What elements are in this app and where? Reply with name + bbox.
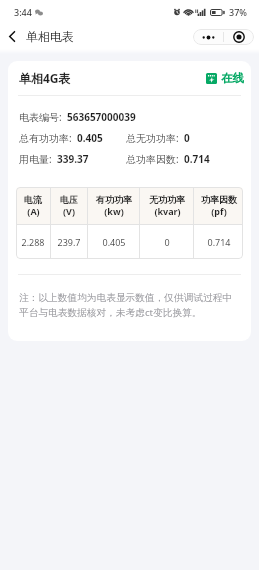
button[interactable]: Close [224, 29, 254, 45]
staticText: 0 [184, 131, 190, 145]
staticText: 0.405 [102, 236, 126, 248]
staticText: 电表编号: [19, 110, 62, 124]
staticText: 总无功功率: [126, 131, 179, 145]
staticText: (V) [63, 205, 75, 217]
staticText: 239.7 [57, 236, 81, 248]
staticText: 0 [164, 236, 170, 248]
staticText: (A) [27, 205, 40, 217]
staticText: (kw) [104, 205, 124, 217]
button[interactable]: More [193, 29, 223, 45]
staticText: (kvar) [154, 205, 181, 217]
staticText: 无功功率 [149, 194, 185, 205]
staticText: 电压 [60, 194, 78, 205]
staticText: 0.714 [207, 236, 231, 248]
staticText: 电流 [24, 194, 42, 205]
staticText: 0.405 [77, 131, 103, 145]
staticText: (pf) [211, 205, 227, 217]
staticText: 有功功率 [96, 194, 132, 205]
staticText: 563657000039 [67, 110, 136, 124]
staticText: 单相电表 [26, 29, 74, 44]
staticText: 2.288 [21, 236, 45, 248]
staticText: 功率因数 [201, 194, 237, 205]
button[interactable]: Back [0, 24, 24, 49]
staticText: 总功率因数: [126, 152, 179, 166]
staticText: 在线 [221, 71, 244, 85]
staticText: 总有功功率: [19, 131, 72, 145]
staticText: 单相4G表 [19, 70, 71, 86]
staticText: 用电量: [19, 152, 52, 166]
staticText: 339.37 [57, 152, 89, 166]
staticText: 0.714 [184, 152, 210, 166]
staticText: 注：以上数值均为电表显示数值，仅供调试过程中平台与电表数据核对，未考虑ct变比换… [19, 292, 241, 319]
staticText: 37% [229, 6, 247, 18]
staticText: 3:44 [14, 6, 32, 18]
